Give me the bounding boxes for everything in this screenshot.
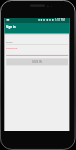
button[interactable]: Sign in	[4, 23, 69, 34]
button[interactable]: Email	[6, 38, 68, 46]
staticText: Password	[6, 46, 18, 49]
button[interactable]: SIGN IN	[6, 58, 68, 65]
staticText: 1:57 PM	[55, 18, 65, 22]
button[interactable]: Password	[6, 45, 68, 55]
staticText: SIGN IN	[32, 60, 42, 64]
staticText: Sign in	[6, 25, 16, 29]
staticText: Email	[6, 40, 13, 43]
